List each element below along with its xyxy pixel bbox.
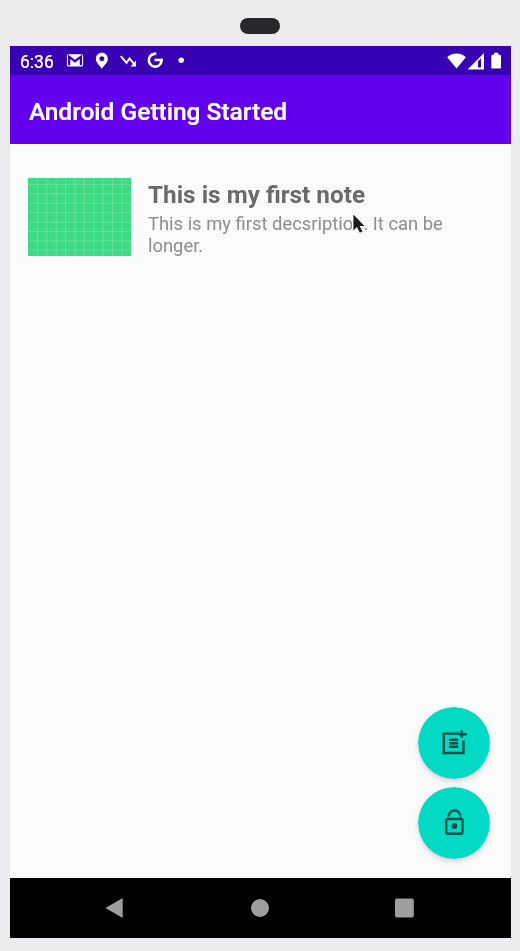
button[interactable]: Unlock notes <box>418 787 490 859</box>
button[interactable]: Recent apps <box>364 878 444 938</box>
button[interactable]: Back <box>84 878 164 938</box>
staticText: Android Getting Started <box>29 97 288 126</box>
staticText: 6:36 <box>20 52 54 73</box>
staticText: This is my first note <box>148 180 366 208</box>
button[interactable]: This is my first note <box>10 144 511 270</box>
staticText: This is my first decsription. It can be … <box>148 213 458 256</box>
button[interactable]: Add note <box>418 707 490 779</box>
button[interactable]: Home <box>220 878 300 938</box>
